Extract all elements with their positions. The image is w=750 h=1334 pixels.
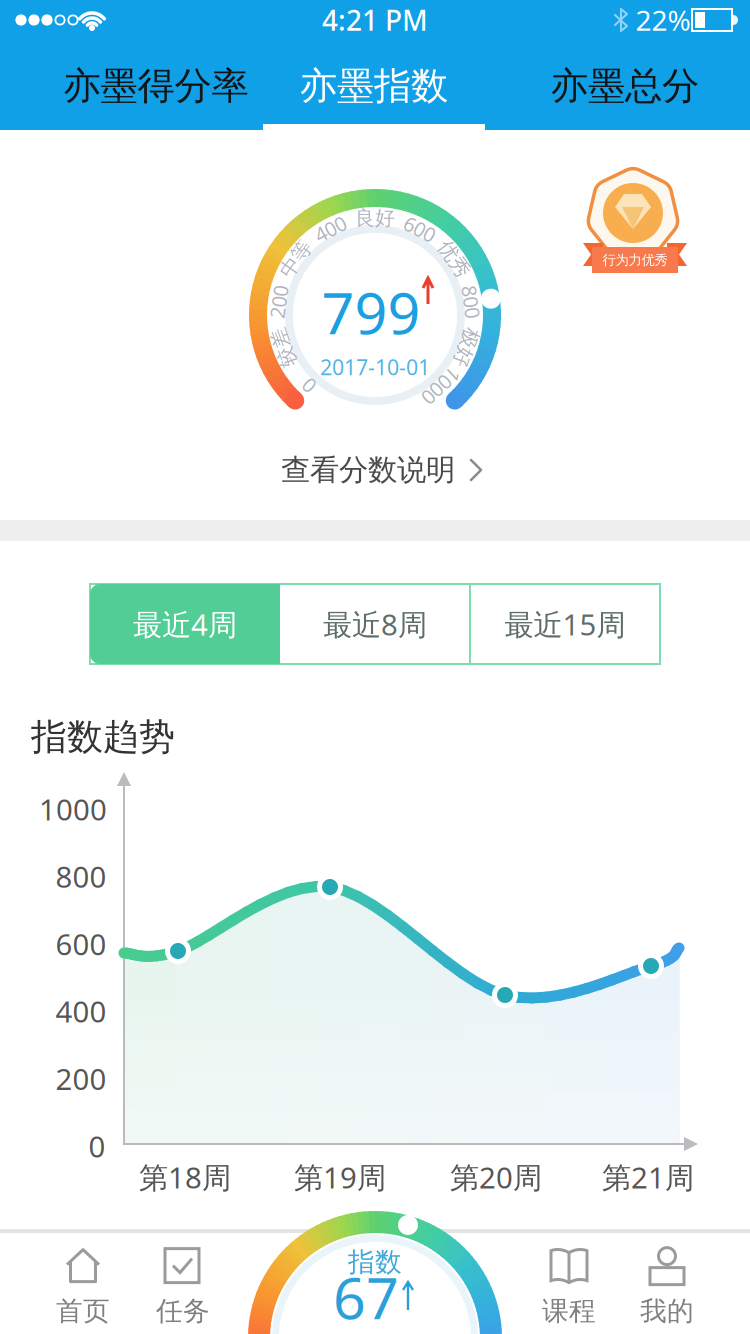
staticText: 第19周 [294, 1157, 386, 1196]
staticText: 查看分数说明 [281, 452, 455, 488]
staticText: 指数 [348, 1246, 402, 1278]
button[interactable]: 指数 [280, 1240, 470, 1334]
staticText: 0 [88, 1126, 105, 1165]
button[interactable]: 最近8周 [282, 586, 468, 662]
button[interactable]: 查看分数说明 [253, 440, 513, 500]
button[interactable]: 亦墨总分 [515, 46, 735, 126]
staticText: 1000 [39, 789, 107, 828]
staticText: 中等 [276, 247, 316, 271]
staticText: 最近15周 [504, 604, 625, 643]
staticText: 亦墨指数 [300, 63, 448, 109]
staticText: 400 [55, 992, 106, 1031]
staticText: 600 [403, 216, 436, 242]
staticText: 第20周 [450, 1157, 542, 1196]
staticText: 我的 [640, 1295, 694, 1327]
staticText: 第18周 [139, 1157, 231, 1196]
staticText: 优秀 [434, 247, 474, 271]
button[interactable]: 最近4周 [90, 584, 280, 664]
staticText: 亦墨得分率 [63, 63, 248, 109]
staticText: 800 [455, 289, 488, 315]
button[interactable]: 课程 [514, 1239, 624, 1334]
staticText: 0 [303, 373, 314, 399]
button[interactable]: 最近15周 [472, 586, 658, 662]
staticText: 200 [262, 289, 295, 315]
staticText: 任务 [156, 1295, 210, 1327]
button[interactable]: 首页 [28, 1239, 138, 1334]
button[interactable]: 亦墨指数 [264, 46, 484, 126]
staticText: 1000 [419, 373, 463, 399]
staticText: 课程 [542, 1295, 596, 1327]
button[interactable]: 亦墨得分率 [41, 46, 271, 126]
staticText: 行为力优秀 [602, 252, 667, 268]
button[interactable]: 任务 [128, 1239, 238, 1334]
staticText: 指数趋势 [31, 715, 175, 759]
staticText: 良好 [355, 206, 395, 230]
staticText: 极好 [446, 335, 486, 360]
staticText: 4:21 PM [322, 1, 428, 39]
staticText: 799 [321, 274, 420, 350]
staticText: 首页 [56, 1295, 110, 1327]
staticText: 800 [55, 857, 106, 896]
staticText: 最近8周 [323, 604, 427, 643]
staticText: 67 [333, 1259, 399, 1334]
staticText: 最近4周 [133, 604, 237, 643]
staticText: 2017-10-01 [320, 353, 430, 381]
staticText: 较差 [264, 335, 304, 360]
staticText: 22% [635, 1, 690, 39]
staticText: 200 [55, 1059, 106, 1098]
staticText: 400 [314, 216, 347, 242]
button[interactable]: 我的 [612, 1239, 722, 1334]
staticText: 亦墨总分 [551, 63, 699, 109]
staticText: 第21周 [602, 1157, 694, 1196]
staticText: 600 [55, 924, 106, 963]
